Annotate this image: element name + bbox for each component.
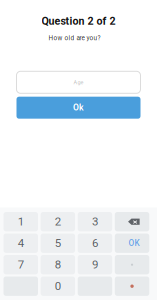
staticText: Ok (73, 103, 84, 113)
staticText: 5 (55, 236, 61, 250)
staticText: 8 (55, 258, 61, 271)
button[interactable]: OK (115, 233, 149, 253)
button[interactable]: 8 (41, 255, 75, 274)
button[interactable]: 7 (3, 255, 38, 274)
staticText: 6 (92, 236, 98, 250)
button[interactable]: 0 (41, 276, 75, 296)
staticText: 1 (18, 215, 24, 228)
staticText: 2 (55, 215, 61, 228)
staticText: 9 (92, 258, 98, 271)
staticText: 4 (18, 236, 24, 250)
button[interactable]: 4 (3, 233, 38, 253)
button[interactable]: Keyboard options (115, 276, 149, 296)
staticText: Question 2 of 2 (41, 15, 115, 27)
staticText: 7 (18, 258, 24, 271)
button[interactable]: 2 (41, 212, 75, 231)
staticText: 3 (92, 215, 98, 228)
staticText: OK (129, 238, 140, 248)
staticText: 0 (55, 279, 61, 293)
button[interactable]: Ok (16, 97, 140, 119)
button[interactable]: 5 (41, 233, 75, 253)
staticText: Age (73, 79, 83, 85)
button[interactable]: 1 (3, 212, 38, 231)
button[interactable]: Age (16, 71, 140, 93)
staticText: How old are you? (48, 34, 100, 42)
button[interactable]: 6 (78, 233, 112, 253)
button[interactable]: Delete (115, 212, 149, 231)
button[interactable]: 3 (78, 212, 112, 231)
button[interactable]: 9 (78, 255, 112, 274)
